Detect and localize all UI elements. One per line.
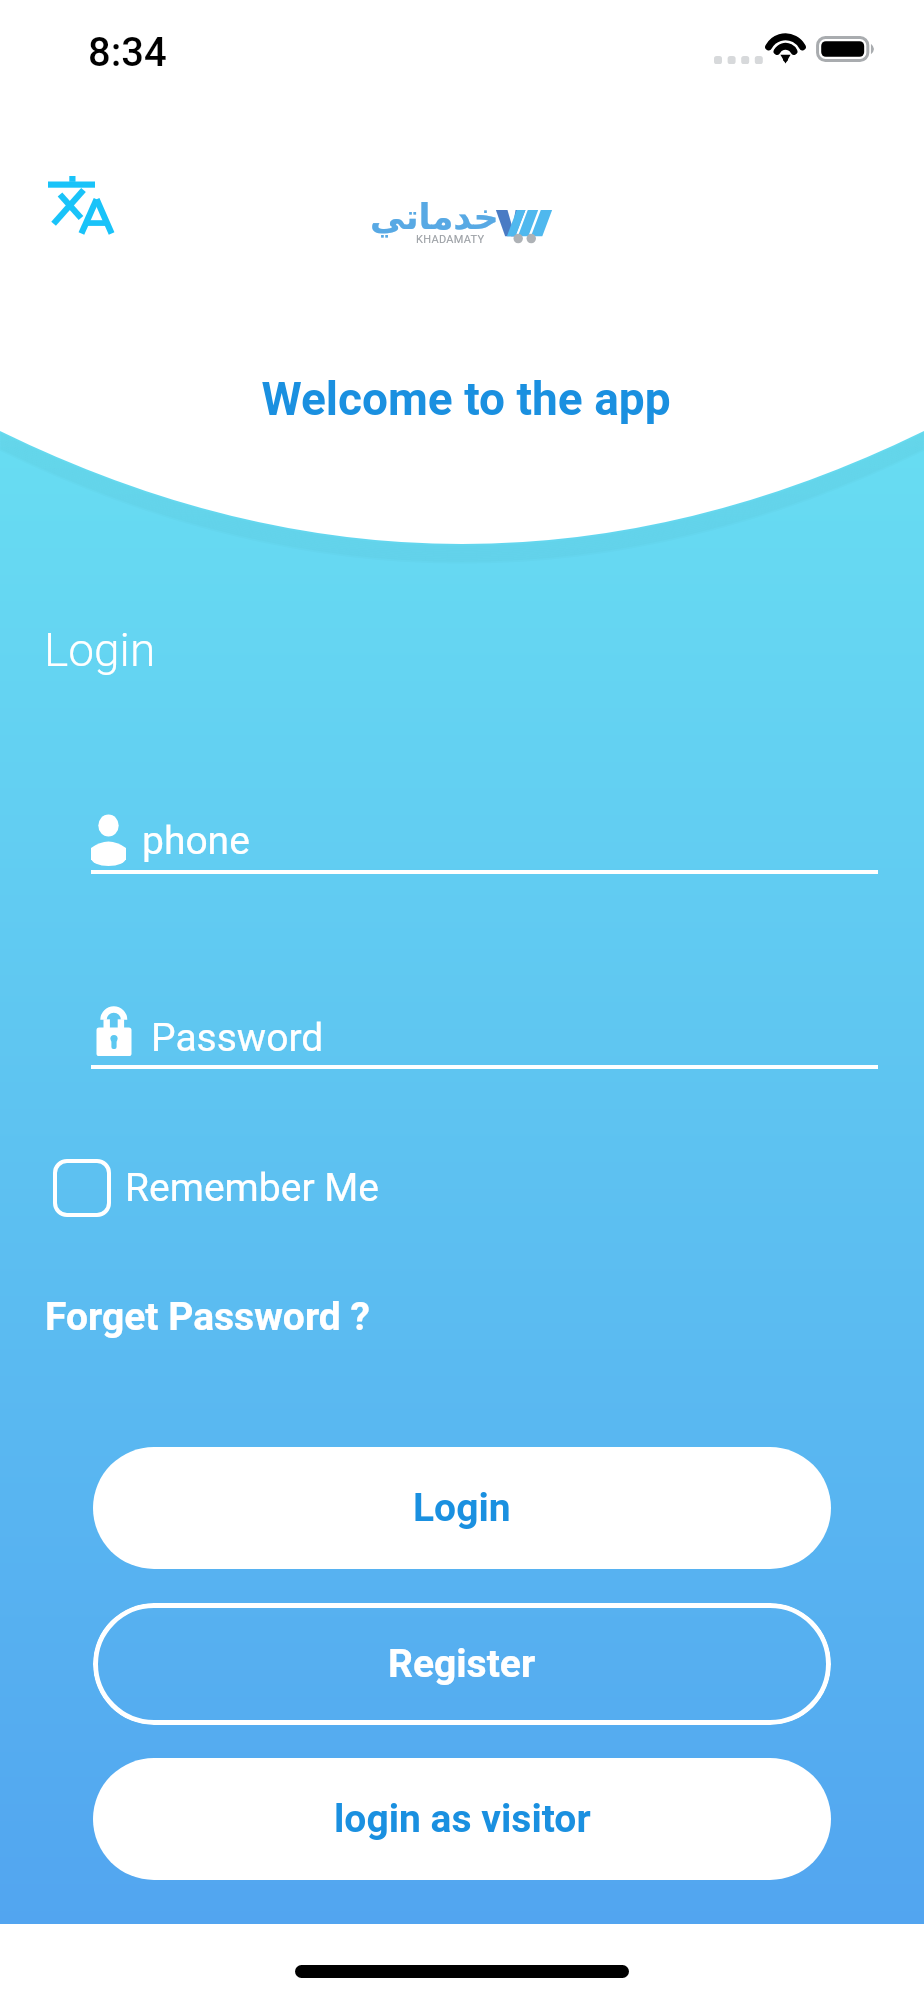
button[interactable]: login as visitor: [93, 1758, 831, 1880]
staticText: Login: [413, 1485, 511, 1531]
button[interactable]: Password: [91, 993, 878, 1069]
button[interactable]: Forget Password ?: [45, 1294, 370, 1340]
button[interactable]: Login: [93, 1447, 831, 1569]
staticText: Forget Password ?: [45, 1294, 370, 1340]
staticText: KHADAMATY: [416, 233, 485, 246]
button[interactable]: Register: [93, 1603, 831, 1725]
staticText: خدماتي: [370, 197, 499, 238]
staticText: Login: [44, 623, 156, 677]
staticText: Password: [151, 1015, 324, 1061]
button[interactable]: Remember Me: [53, 1159, 379, 1217]
staticText: phone: [142, 818, 250, 864]
staticText: Welcome to the app: [4, 372, 924, 426]
staticText: 8:34: [88, 29, 167, 76]
staticText: Remember Me: [125, 1165, 379, 1211]
button[interactable]: Change language: [36, 164, 124, 246]
staticText: Register: [388, 1641, 536, 1687]
staticText: login as visitor: [334, 1796, 591, 1842]
button[interactable]: phone: [91, 800, 878, 874]
